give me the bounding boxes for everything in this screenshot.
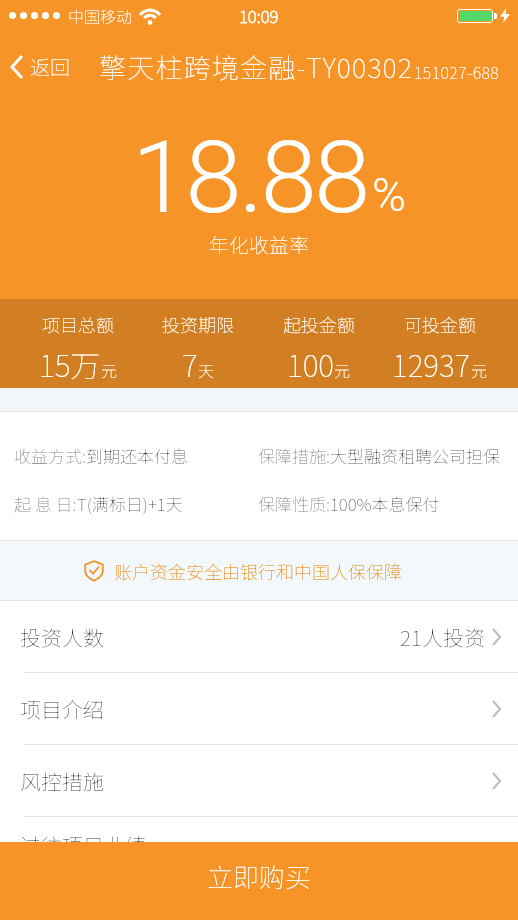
staticText: 项目总额 (42, 311, 114, 337)
staticText: 元 (334, 358, 351, 381)
staticText: 中国移动 (68, 4, 133, 27)
staticText: 元 (101, 358, 118, 381)
staticText: 保障措施: (258, 443, 330, 468)
staticText: 擎天柱跨境金融-TY00302 (99, 47, 414, 86)
button[interactable]: 风控措施 (0, 745, 518, 816)
staticText: 投资期限 (162, 311, 234, 337)
staticText: 投资人数 (20, 622, 104, 652)
staticText: 项目介绍 (20, 694, 104, 724)
staticText: 大型融资租聘公司担保 (330, 443, 500, 468)
staticText: 到期还本付息 (86, 443, 188, 468)
staticText: 10:09 (239, 3, 279, 28)
staticText: 7 (182, 342, 198, 385)
button[interactable]: 返回 (10, 52, 70, 81)
staticText: 元 (471, 358, 488, 381)
staticText: 起投金额 (283, 311, 355, 337)
staticText: 21人投资 (400, 622, 485, 652)
staticText: 返回 (30, 52, 70, 81)
button[interactable]: 立即购买 (0, 842, 518, 920)
staticText: 可投金额 (404, 311, 476, 337)
staticText: 12937 (392, 342, 471, 385)
staticText: 账户资金安全由银行和中国人保保障 (114, 558, 402, 584)
staticText: 100%本息保付 (330, 491, 440, 516)
staticText: 18.88 (132, 118, 368, 236)
staticText: 立即购买 (207, 857, 312, 895)
staticText: 起 息 日: (14, 491, 77, 516)
button[interactable]: 项目介绍 (0, 673, 518, 744)
staticText: 保障性质: (258, 491, 330, 516)
staticText: 100 (287, 342, 334, 385)
staticText: 过往项目业绩 (20, 830, 146, 842)
staticText: T(满标日)+1天 (77, 491, 183, 516)
staticText: 风控措施 (20, 766, 104, 796)
staticText: 151027-688 (414, 60, 500, 83)
staticText: 15万 (39, 342, 101, 385)
staticText: 天 (198, 358, 215, 381)
staticText: 收益方式: (14, 443, 86, 468)
staticText: % (372, 168, 407, 222)
staticText: 年化收益率 (209, 230, 309, 259)
button[interactable]: 投资人数 (0, 601, 518, 672)
